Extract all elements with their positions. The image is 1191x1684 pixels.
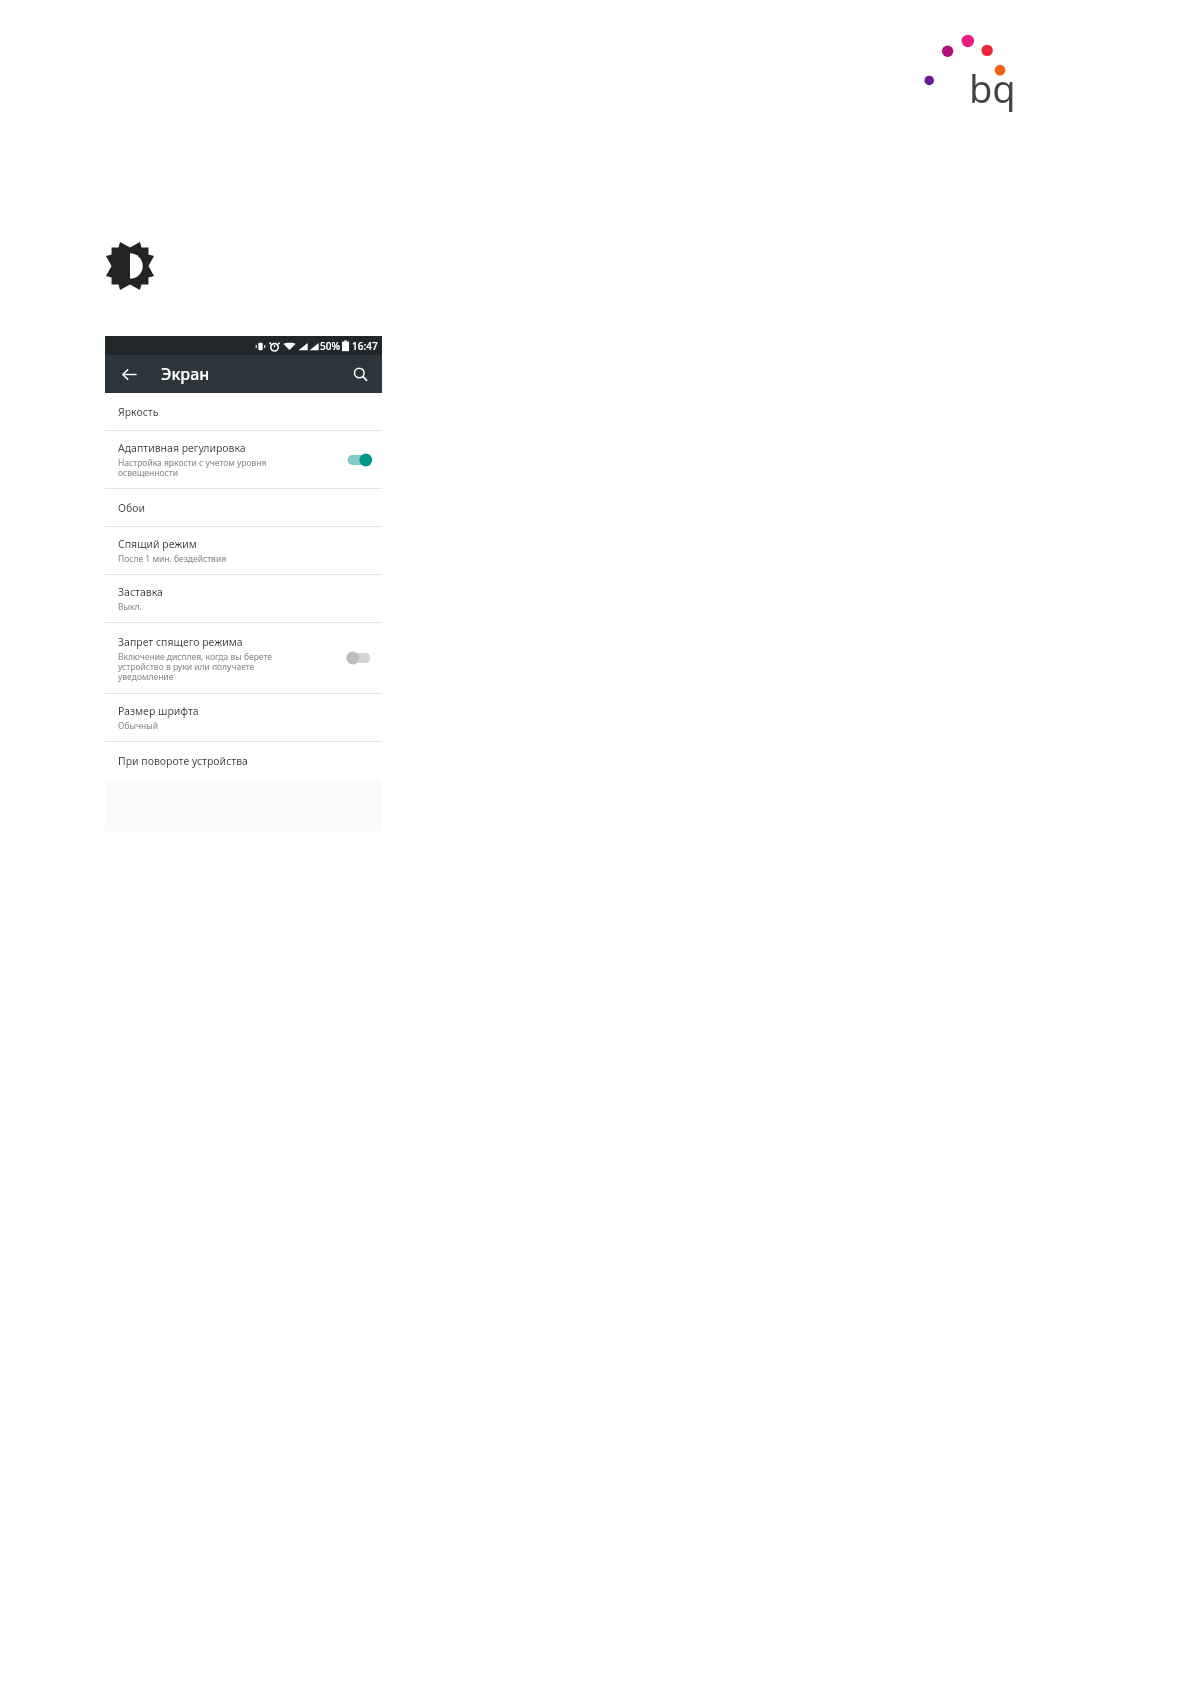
staticText: 16:47 <box>352 339 378 353</box>
staticText: Запрет спящего режима <box>118 635 243 649</box>
staticText: Выкл. <box>118 601 142 613</box>
button[interactable]: При повороте устройства <box>105 742 382 779</box>
staticText: Спящий режим <box>118 537 197 551</box>
other: Brightness <box>104 240 156 292</box>
staticText: Экран <box>161 363 210 385</box>
staticText: После 1 мин. бездействия <box>118 553 227 565</box>
staticText: Яркость <box>118 405 159 419</box>
staticText: Обои <box>118 501 146 515</box>
button[interactable]: Обои <box>105 489 382 526</box>
button[interactable]: Заставка <box>105 575 382 622</box>
button[interactable]: Back <box>115 360 143 388</box>
staticText: При повороте устройства <box>118 754 248 768</box>
staticText: Адаптивная регулировка <box>118 441 246 455</box>
staticText: Включение дисплея, когда вы берете устро… <box>118 651 272 682</box>
button[interactable]: Спящий режим <box>105 527 382 574</box>
staticText: Размер шрифта <box>118 704 199 718</box>
button[interactable]: Запрет спящего режима <box>105 623 382 693</box>
button[interactable]: Search <box>346 360 374 388</box>
staticText: 50% <box>320 339 340 353</box>
staticText: Настройка яркости с учетом уровня освеще… <box>118 457 267 478</box>
button[interactable]: Размер шрифта <box>105 694 382 741</box>
staticText: bq <box>969 62 1016 114</box>
button[interactable]: Toggle off <box>346 650 372 666</box>
staticText: Заставка <box>118 585 163 599</box>
button[interactable]: Адаптивная регулировка <box>105 431 382 488</box>
button[interactable]: Toggle on <box>346 452 372 468</box>
staticText: Обычный <box>118 720 158 732</box>
button[interactable]: Яркость <box>105 393 382 430</box>
